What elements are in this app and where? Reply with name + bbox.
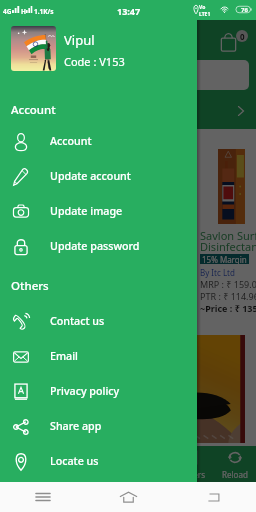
button[interactable]: Recent apps xyxy=(0,482,86,512)
staticText: Contact us xyxy=(50,314,105,329)
button[interactable] xyxy=(8,60,249,90)
staticText: Contract xyxy=(10,103,55,118)
staticText: Email xyxy=(50,349,78,364)
button[interactable]: Search xyxy=(42,446,84,483)
staticText: ~Price : ₹ 135 xyxy=(200,302,256,314)
button[interactable]: Cart xyxy=(127,446,170,483)
button[interactable]: Cart xyxy=(220,31,237,52)
staticText: Share app xyxy=(50,419,102,434)
staticText: 76 xyxy=(241,6,248,14)
staticText: LTE1 xyxy=(199,11,211,18)
button[interactable] xyxy=(8,335,245,443)
button[interactable]: Share app xyxy=(0,409,197,444)
staticText: Update image xyxy=(50,204,123,219)
button[interactable]: Update account xyxy=(0,159,197,194)
staticText: PTR : ₹ 114.96 xyxy=(200,290,256,302)
staticText: H xyxy=(21,7,26,16)
button[interactable]: Update image xyxy=(0,194,197,229)
staticText: Home xyxy=(10,469,33,480)
staticText: Orders xyxy=(179,469,205,480)
staticText: Update password xyxy=(50,239,140,254)
staticText: Savlon Surf Disinfectant xyxy=(200,228,256,254)
staticText: Account xyxy=(11,102,56,118)
staticText: 13:47 xyxy=(117,5,141,17)
staticText: Code : V153 xyxy=(64,54,125,69)
button[interactable]: Account xyxy=(0,124,197,159)
staticText: MRP : ₹ 159.0 xyxy=(200,278,256,290)
button[interactable]: Back xyxy=(171,482,256,512)
button[interactable]: Privacy policy xyxy=(0,374,197,409)
staticText: 15% Margin xyxy=(202,254,247,264)
button[interactable]: Update password xyxy=(0,229,197,264)
staticText: Account xyxy=(50,134,92,149)
button[interactable]: Contact us xyxy=(0,304,197,339)
staticText: Vo xyxy=(199,4,206,11)
staticText: Update account xyxy=(50,169,131,184)
staticText: 4G xyxy=(3,7,12,16)
button[interactable]: Email xyxy=(0,339,197,374)
staticText: 0 xyxy=(240,31,245,42)
button[interactable]: Savlon Surf Disinfectant xyxy=(199,134,256,329)
staticText: Others xyxy=(11,278,49,294)
button[interactable]: Orders xyxy=(170,446,213,483)
staticText: Vipul xyxy=(64,31,95,49)
staticText: By Itc Ltd xyxy=(200,267,235,278)
button[interactable]: Reload xyxy=(213,446,256,483)
button[interactable]: Contract xyxy=(0,98,256,123)
staticText: 1.1K/s xyxy=(34,7,54,16)
button[interactable]: Home xyxy=(86,482,171,512)
button[interactable]: Offers xyxy=(84,446,127,483)
button[interactable]: Locate us xyxy=(0,444,197,479)
staticText: Reload xyxy=(222,469,248,480)
staticText: Privacy policy xyxy=(50,384,120,399)
button[interactable]: Home xyxy=(0,446,42,483)
staticText: Locate us xyxy=(50,454,99,469)
